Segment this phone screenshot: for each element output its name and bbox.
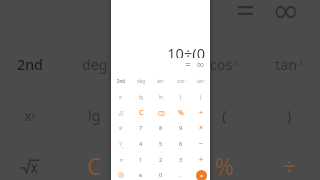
button[interactable]: multiply [191,120,210,136]
staticText: 1⁄x [119,141,123,148]
staticText: 10÷(0 [167,43,205,58]
button[interactable]: five [151,136,171,152]
button[interactable]: plus [191,152,210,168]
button[interactable]: square root [111,105,131,121]
staticText: deg [82,55,108,74]
button[interactable]: inverse tangent [257,39,320,90]
button[interactable]: second function [111,73,131,89]
button[interactable]: backspace [127,141,192,180]
button[interactable]: pi [111,152,131,168]
button[interactable]: factorial [111,120,131,136]
button[interactable]: three [171,152,191,168]
staticText: ÷ [199,108,204,118]
button[interactable]: seven [131,120,151,136]
button[interactable]: divide [191,105,210,121]
button[interactable]: history [111,167,131,180]
staticText: 7 [139,124,143,132]
staticText: tan-1 [275,55,304,74]
button[interactable]: inverse sine [151,73,171,89]
button[interactable]: minus [191,136,210,152]
staticText: ln [159,94,163,100]
staticText: . [180,171,182,179]
staticText: ÷ [283,151,296,180]
staticText: π [120,157,123,163]
staticText: ln [153,106,166,125]
button[interactable]: degrees [62,39,127,90]
button[interactable]: log base ten [131,89,151,105]
staticText: ( [222,106,227,125]
staticText: = ∞ [185,57,205,68]
staticText: x! [119,125,123,131]
staticText: 2 [159,156,163,164]
staticText: tan-1 [197,78,206,84]
button[interactable]: open bracket [171,89,191,105]
staticText: 2nd [17,55,43,74]
button[interactable]: two [151,152,171,168]
staticText: lg [88,106,101,125]
button[interactable]: inverse sine [127,39,192,90]
button[interactable]: nine [171,120,191,136]
button[interactable]: zero [151,167,171,180]
button[interactable]: clear [62,141,127,180]
staticText: = ∞ [236,0,300,23]
staticText: lg [139,94,143,100]
staticText: 5 [159,140,163,148]
button[interactable]: percent [192,141,257,180]
staticText: % [178,108,184,118]
button[interactable]: square root [0,141,62,180]
staticText: 9 [179,124,183,132]
staticText: − [199,139,204,149]
staticText: = [200,172,204,180]
button[interactable]: clear [131,105,151,121]
staticText: sin-1 [157,78,165,84]
button[interactable]: inverse tangent [191,73,210,89]
button[interactable]: second function [0,39,62,90]
staticText: cos-1 [210,55,239,74]
staticText: C [87,151,102,180]
staticText: xy [24,106,36,125]
button[interactable]: open bracket [192,90,257,141]
staticText: sin-1 [147,55,173,74]
staticText: ) [200,94,202,100]
staticText: 3 [179,156,183,164]
staticText: C [139,108,144,118]
button[interactable]: equals [191,167,210,180]
button[interactable]: x to the power of y [111,89,131,105]
button[interactable]: six [171,136,191,152]
button[interactable]: natural logarithm [127,90,192,141]
staticText: 8 [159,124,163,132]
staticText: e [139,171,143,179]
staticText: 6 [179,140,183,148]
button[interactable]: backspace [151,105,171,121]
button[interactable]: degrees [131,73,151,89]
button[interactable]: percent [171,105,191,121]
button[interactable]: reciprocal [111,136,131,152]
button[interactable]: log base ten [62,90,127,141]
staticText: deg [137,78,145,84]
button[interactable]: four [131,136,151,152]
button[interactable]: one [131,152,151,168]
button[interactable]: divide [257,141,320,180]
staticText: ( [180,94,182,100]
button[interactable]: inverse cosine [171,73,191,89]
staticText: 4 [139,140,143,148]
staticText: 1 [139,156,143,164]
staticText: xy [119,94,123,100]
button[interactable]: inverse cosine [192,39,257,90]
staticText: 2nd [117,78,125,84]
button[interactable]: natural logarithm [151,89,171,105]
button[interactable]: close bracket [191,89,210,105]
staticText: % [215,151,234,180]
staticText: ) [287,106,292,125]
staticText: + [199,155,204,165]
button[interactable]: e [131,167,151,180]
staticText: 0 [159,171,163,179]
staticText: cos-1 [177,78,186,84]
button[interactable]: eight [151,120,171,136]
staticText: × [199,123,204,133]
